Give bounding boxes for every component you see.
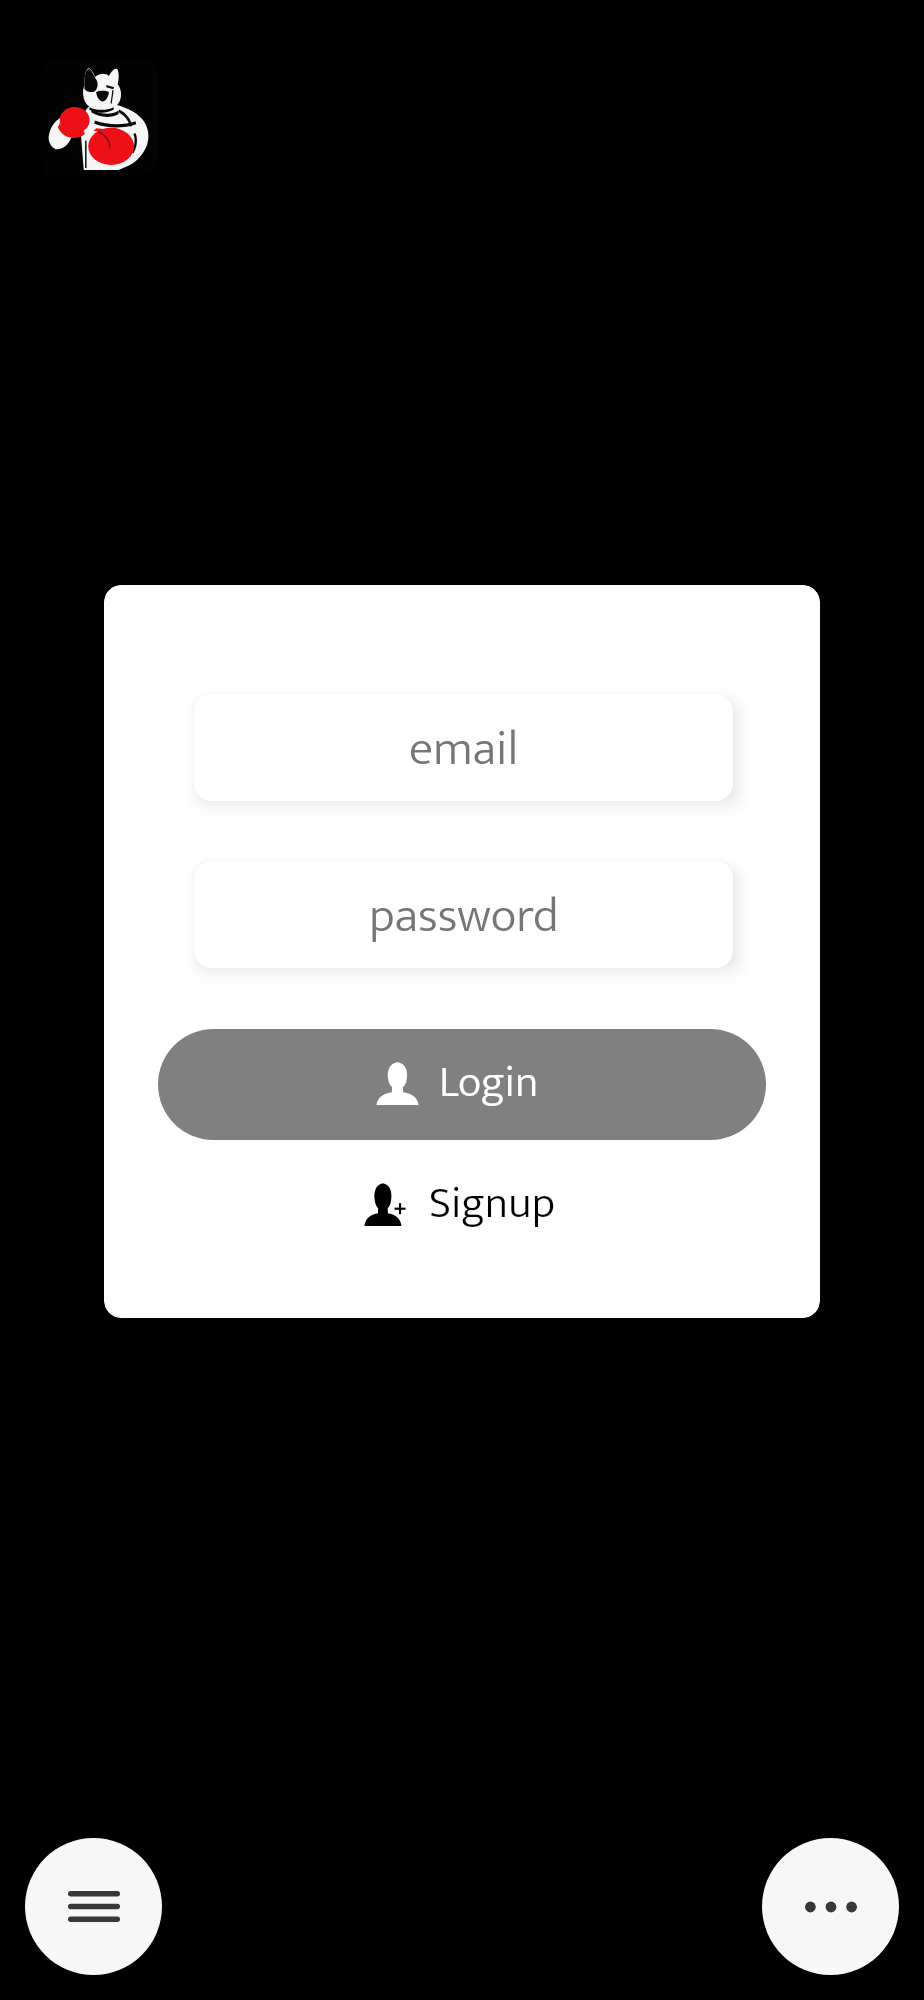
button[interactable]: password	[194, 861, 733, 968]
button[interactable]: App logo	[40, 59, 158, 177]
staticText: email	[409, 709, 519, 790]
staticText: password	[369, 876, 559, 957]
staticText: Login	[439, 1046, 539, 1120]
button[interactable]: Signup	[364, 1167, 555, 1241]
button[interactable]: Menu	[25, 1838, 162, 1975]
button[interactable]: email	[194, 694, 733, 801]
button[interactable]: Login	[158, 1029, 766, 1140]
button[interactable]: More options	[762, 1838, 899, 1975]
staticText: Signup	[429, 1167, 555, 1241]
